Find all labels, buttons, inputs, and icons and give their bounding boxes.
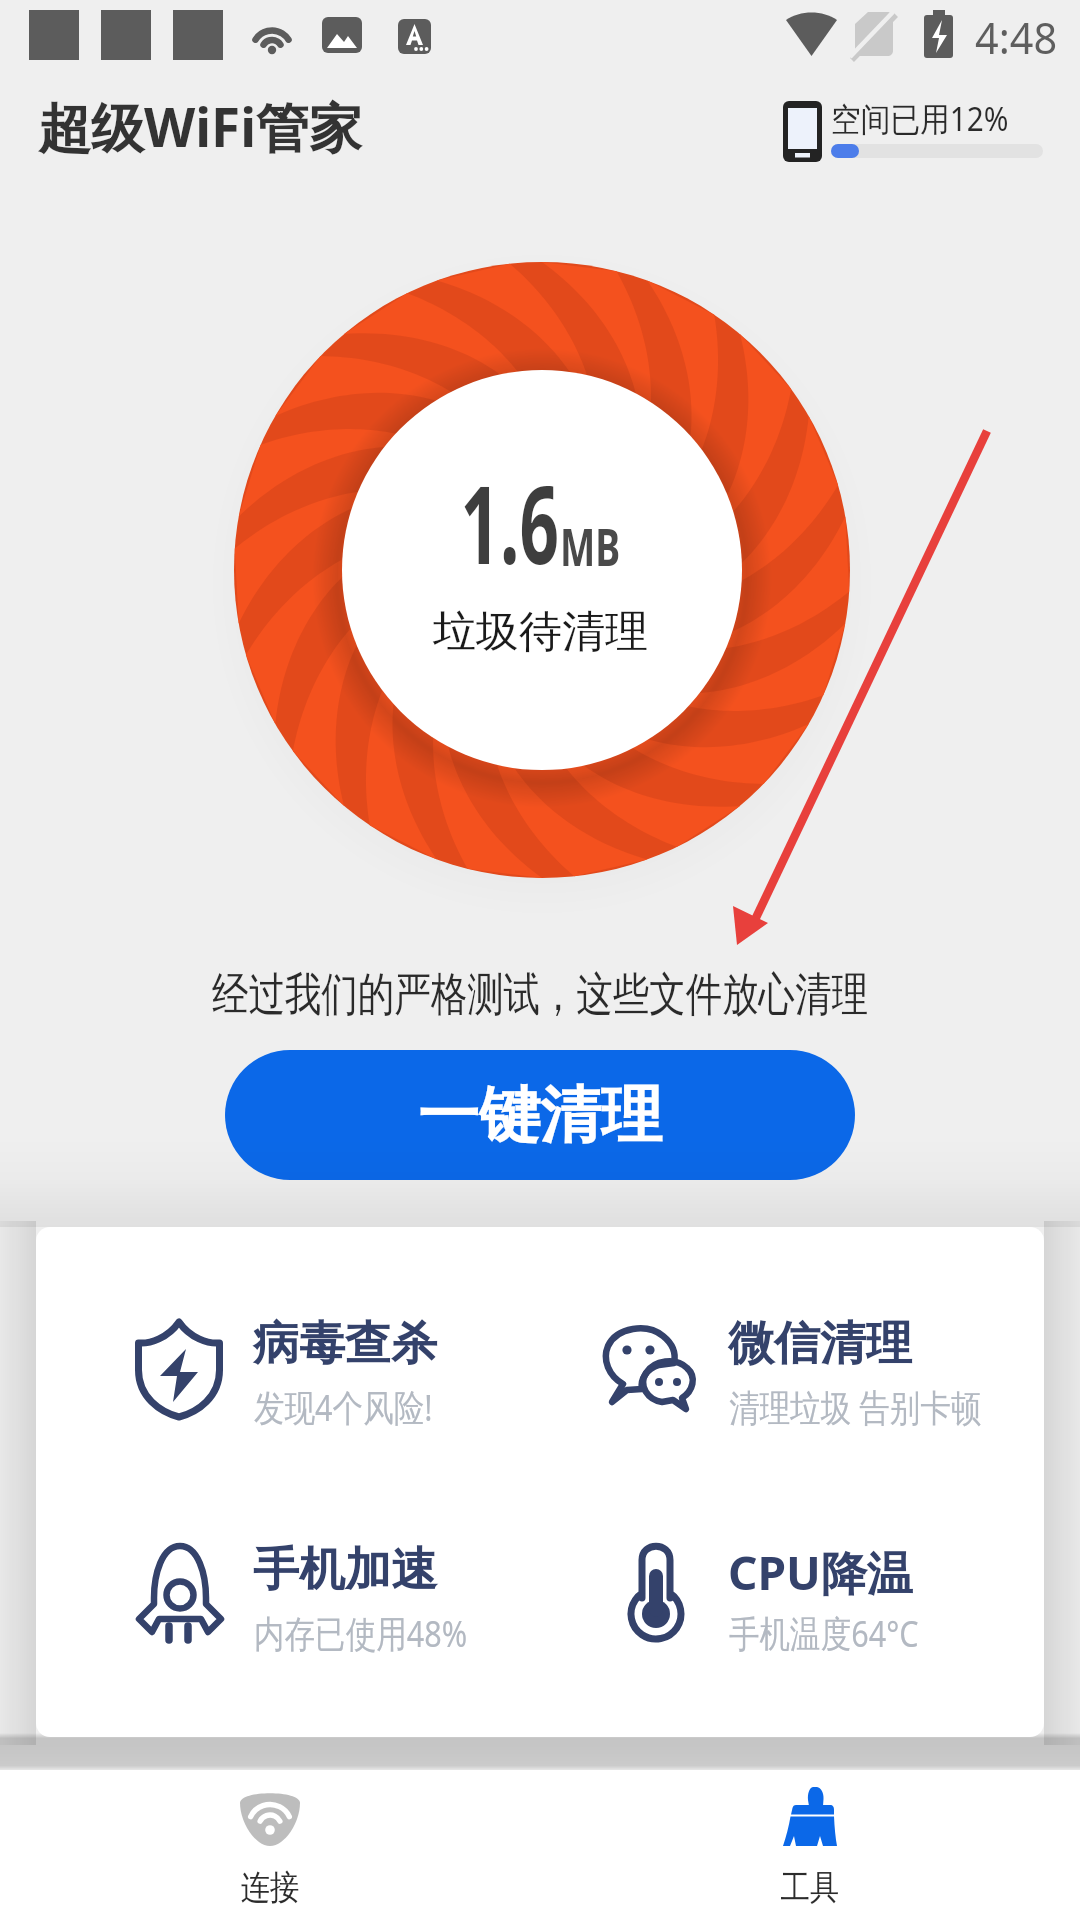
staticText: 微信清理: [728, 1315, 912, 1373]
staticText: 清理垃圾 告别卡顿: [729, 1381, 982, 1432]
staticText: MB: [560, 510, 620, 581]
button[interactable]: 连接: [0, 1770, 540, 1920]
button[interactable]: 病毒查杀: [123, 1315, 543, 1445]
staticText: 内存已使用48%: [254, 1607, 468, 1658]
button[interactable]: 一键清理: [225, 1050, 855, 1180]
button[interactable]: 手机加速: [123, 1541, 543, 1671]
staticText: 垃圾待清理: [433, 605, 648, 659]
staticText: 1.6: [460, 449, 559, 596]
staticText: 手机温度64°C: [729, 1607, 919, 1658]
staticText: 一键清理: [418, 1077, 662, 1154]
staticText: 空间已用12%: [831, 96, 1009, 141]
staticText: 手机加速: [253, 1541, 437, 1599]
staticText: 病毒查杀: [253, 1315, 437, 1373]
button[interactable]: 微信清理: [598, 1315, 1018, 1445]
other: 连接: [238, 1786, 302, 1850]
button[interactable]: 空间已用12%: [783, 101, 1045, 163]
staticText: 工具: [780, 1866, 840, 1909]
staticText: 超级WiFi管家: [38, 90, 363, 162]
staticText: CPU降温: [728, 1541, 913, 1604]
staticText: 连接: [240, 1866, 300, 1909]
other: 工具: [778, 1786, 842, 1850]
staticText: 4:48: [975, 7, 1058, 67]
button[interactable]: 工具: [540, 1770, 1080, 1920]
button[interactable]: CPU降温: [598, 1541, 1018, 1671]
button[interactable]: 垃圾待清理 1.6 MB: [234, 262, 850, 878]
staticText: 经过我们的严格测试，这些文件放心清理: [212, 966, 868, 1024]
staticText: 发现4个风险!: [254, 1381, 433, 1432]
